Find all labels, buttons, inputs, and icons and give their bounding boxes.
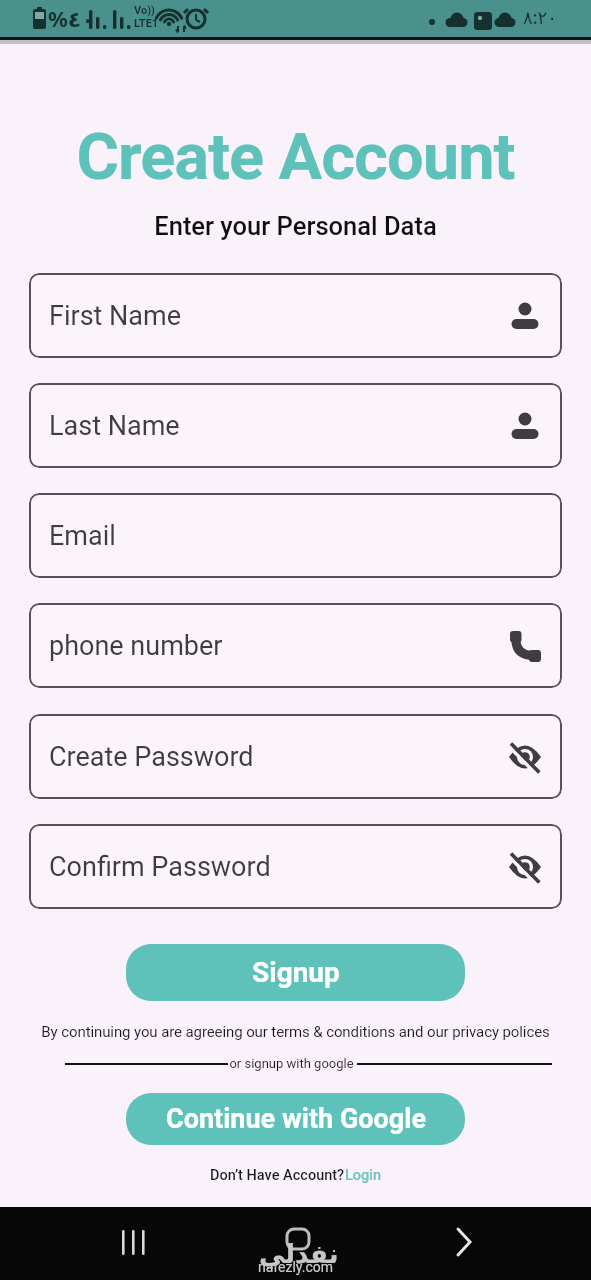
button[interactable]: Create Password xyxy=(29,714,562,799)
staticText: Continue with Google xyxy=(166,1103,426,1135)
button[interactable]: Confirm Password xyxy=(29,824,562,909)
staticText: First Name xyxy=(49,300,182,332)
staticText: nafezly.com xyxy=(0,1259,591,1275)
button[interactable]: First Name xyxy=(29,273,562,358)
staticText: نفذلي xyxy=(259,1239,339,1269)
staticText: phone number xyxy=(49,630,223,662)
staticText: %٤٠ xyxy=(48,3,95,33)
staticText: Create Password xyxy=(49,741,254,773)
staticText: ٨:٢٠ xyxy=(523,5,557,30)
button[interactable]: Signup xyxy=(126,944,465,1001)
staticText: LTE1 xyxy=(134,17,159,30)
button[interactable]: Continue with Google xyxy=(126,1093,465,1145)
button[interactable]: Login xyxy=(345,1167,382,1184)
staticText: Enter your Personal Data xyxy=(0,211,591,241)
staticText: Vo)) xyxy=(134,4,155,17)
button[interactable]: Email xyxy=(29,493,562,578)
staticText: Confirm Password xyxy=(49,851,271,883)
button[interactable]: Last Name xyxy=(29,383,562,468)
button[interactable] xyxy=(437,1218,487,1268)
staticText: Create Account xyxy=(0,119,591,195)
staticText: Signup xyxy=(252,956,340,989)
button[interactable] xyxy=(107,1218,157,1268)
staticText: Last Name xyxy=(49,410,180,442)
staticText: Don’t Have Account? xyxy=(210,1167,345,1184)
staticText: Email xyxy=(49,520,116,552)
staticText: By continuing you are agreeing our terms… xyxy=(0,1023,591,1041)
button[interactable]: phone number xyxy=(29,603,562,688)
staticText: or signup with google xyxy=(0,1056,587,1071)
